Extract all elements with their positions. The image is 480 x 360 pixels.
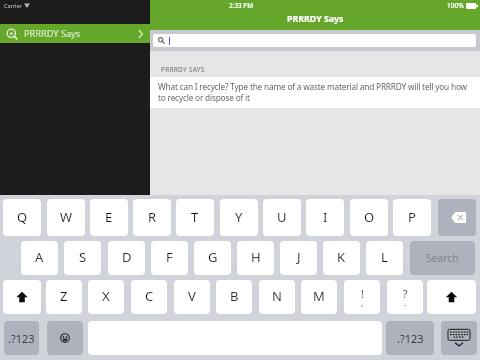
staticText: Y (235, 208, 243, 226)
staticText: H (251, 248, 261, 266)
staticText: V (188, 287, 196, 305)
button[interactable]: T (176, 199, 214, 236)
staticText: Search (426, 251, 459, 265)
button[interactable]: Shift (3, 280, 41, 314)
button[interactable]: S (64, 241, 101, 275)
staticText: J (297, 248, 301, 266)
button[interactable]: N (259, 280, 295, 314)
staticText: E (105, 208, 113, 226)
other: Open (138, 30, 143, 38)
button[interactable]: Q (3, 199, 41, 236)
button[interactable]: .?123 (386, 321, 434, 355)
staticText: S (79, 248, 87, 266)
staticText: N (272, 287, 282, 305)
button[interactable]: G (194, 241, 231, 275)
button[interactable]: H (237, 241, 274, 275)
button[interactable]: Emoji (47, 321, 83, 355)
staticText: P (408, 208, 416, 226)
staticText: U (277, 208, 287, 226)
staticText: R (148, 208, 157, 226)
staticText: W (60, 208, 73, 226)
button[interactable]: M (301, 280, 337, 314)
button[interactable]: V (174, 280, 210, 314)
staticText: X (102, 287, 110, 305)
button[interactable]: .?123 (4, 321, 39, 355)
staticText: A (35, 248, 44, 266)
button[interactable]: I (306, 199, 344, 236)
button[interactable]: O (350, 199, 388, 236)
staticText: T (191, 208, 199, 226)
button[interactable]: Z (46, 280, 82, 314)
button[interactable]: U (263, 199, 301, 236)
staticText: B (230, 287, 239, 305)
button[interactable]: ! (344, 280, 380, 314)
staticText: O (364, 208, 375, 226)
staticText: M (313, 287, 325, 305)
staticText: G (208, 248, 218, 266)
button[interactable]: D (108, 241, 145, 275)
staticText: . (404, 297, 407, 308)
staticText: Q (17, 208, 28, 226)
button[interactable]: A (21, 241, 58, 275)
staticText: .?123 (8, 331, 35, 346)
button[interactable]: W (47, 199, 85, 236)
button[interactable]: Y (220, 199, 258, 236)
button[interactable]: Backspace (438, 199, 476, 236)
button[interactable]: Hide keyboard (441, 321, 477, 355)
staticText: L (381, 248, 388, 266)
staticText: D (122, 248, 132, 266)
button[interactable]: K (323, 241, 360, 275)
button[interactable]: PRRRDY Says (0, 24, 150, 43)
button[interactable]: What can I recycle? Type the name of a w… (150, 77, 480, 108)
button[interactable]: L (366, 241, 403, 275)
staticText: ! (361, 287, 364, 301)
staticText: , (361, 297, 364, 308)
staticText: What can I recycle? Type the name of a w… (158, 81, 467, 103)
staticText: F (166, 248, 173, 266)
staticText: Carrier (4, 2, 22, 9)
button[interactable]: Shift (427, 280, 476, 314)
button[interactable]: F (151, 241, 188, 275)
staticText: PRRRDY Says (287, 13, 344, 25)
staticText: 100% (447, 1, 464, 10)
button[interactable]: ? (387, 280, 423, 314)
staticText: .?123 (397, 331, 424, 346)
staticText: ? (403, 287, 408, 301)
button[interactable]: C (131, 280, 167, 314)
button[interactable]: J (280, 241, 317, 275)
staticText: PRRRDY SAYS (161, 65, 205, 74)
button[interactable]: X (88, 280, 124, 314)
staticText: K (337, 248, 346, 266)
staticText: 2:33 PM (229, 1, 254, 10)
button[interactable] (153, 34, 476, 47)
staticText: I (323, 208, 328, 226)
button[interactable]: B (216, 280, 252, 314)
button[interactable]: E (90, 199, 128, 236)
staticText: Z (60, 287, 68, 305)
button[interactable]: P (393, 199, 431, 236)
staticText: C (145, 287, 154, 305)
button[interactable]: R (133, 199, 171, 236)
staticText: PRRRDY Says (24, 27, 81, 40)
button[interactable]: Search (410, 241, 475, 275)
